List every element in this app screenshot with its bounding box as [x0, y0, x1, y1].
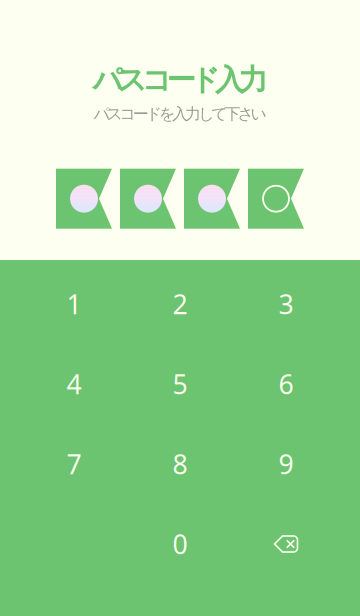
button[interactable]: 2: [127, 264, 233, 344]
button[interactable]: 8: [127, 424, 233, 504]
staticText: 7: [66, 446, 81, 482]
staticText: 8: [172, 446, 187, 482]
staticText: 9: [278, 446, 293, 482]
button[interactable]: 7: [21, 424, 127, 504]
staticText: 2: [172, 286, 187, 322]
staticText: 0: [172, 526, 187, 562]
staticText: パスコードを入力して下さい: [93, 104, 267, 124]
button[interactable]: Delete: [233, 504, 339, 584]
staticText: 3: [278, 286, 293, 322]
staticText: パスコード入力: [92, 62, 268, 98]
button[interactable]: 5: [127, 344, 233, 424]
staticText: 5: [172, 366, 187, 402]
button[interactable]: 6: [233, 344, 339, 424]
staticText: 6: [278, 366, 293, 402]
button[interactable]: 3: [233, 264, 339, 344]
button[interactable]: 0: [127, 504, 233, 584]
button[interactable]: 1: [21, 264, 127, 344]
staticText: 4: [66, 366, 81, 402]
button[interactable]: 4: [21, 344, 127, 424]
button[interactable]: 9: [233, 424, 339, 504]
staticText: 1: [66, 286, 81, 322]
